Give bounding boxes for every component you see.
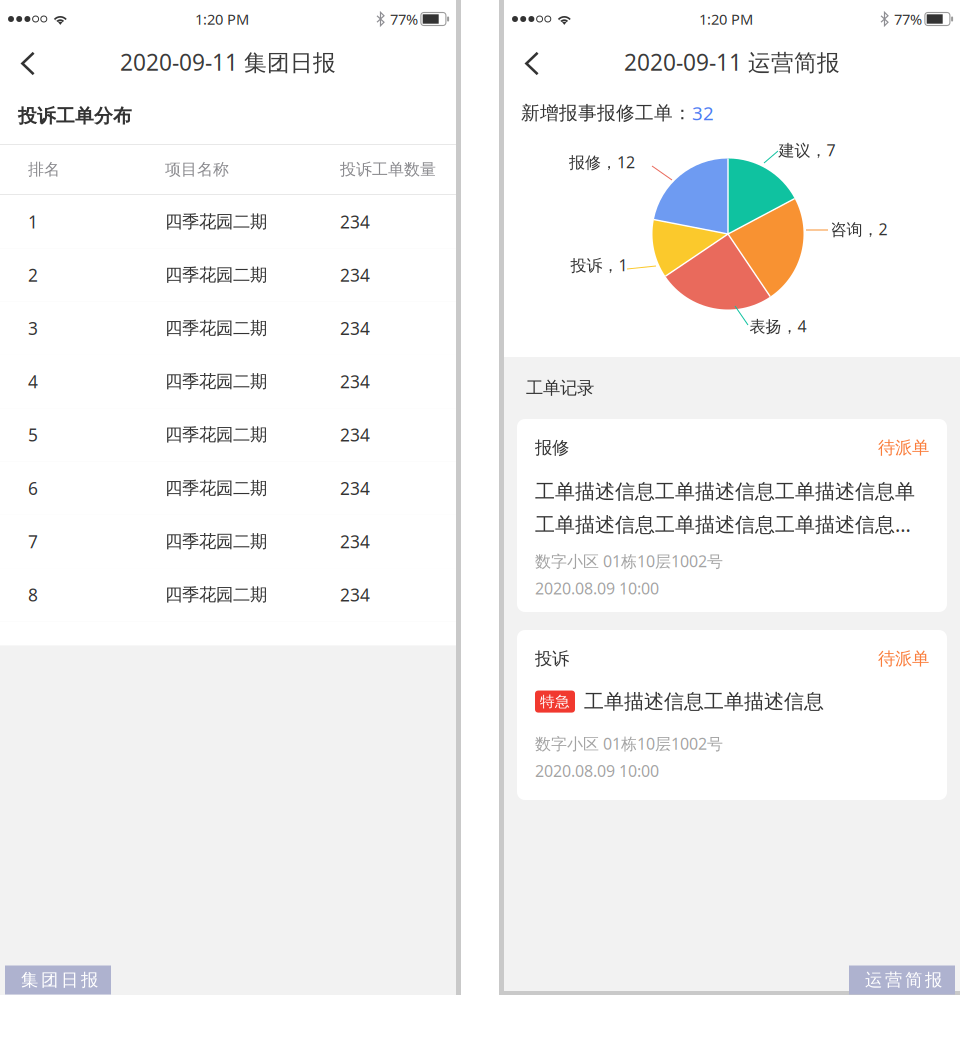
staticText: 234 <box>340 423 370 446</box>
staticText: 4 <box>28 370 38 393</box>
staticText: 2020-09-11 集团日报 <box>120 47 336 77</box>
button[interactable]: 1 <box>0 195 456 248</box>
staticText: 四季花园二期 <box>165 371 267 392</box>
staticText: 四季花园二期 <box>165 264 267 286</box>
button[interactable]: 2 <box>0 248 456 302</box>
staticText: 项目名称 <box>165 160 229 179</box>
staticText: 1:20 PM <box>699 9 753 29</box>
button[interactable]: 3 <box>0 302 456 355</box>
staticText: 投诉，1 <box>570 254 627 276</box>
button[interactable]: 集团日报 <box>5 965 111 994</box>
staticText: 报修，12 <box>569 151 635 173</box>
staticText: 8 <box>28 583 38 606</box>
staticText: 7 <box>28 530 38 553</box>
staticText: 234 <box>340 583 370 606</box>
button[interactable]: 报修 <box>517 419 947 612</box>
staticText: 5 <box>28 423 38 446</box>
staticText: 77% <box>894 9 922 29</box>
button[interactable]: 8 <box>0 568 456 621</box>
staticText: 四季花园二期 <box>165 531 267 552</box>
staticText: 集团日报 <box>21 969 98 991</box>
staticText: 数字小区 01栋10层1002号 <box>535 550 723 572</box>
staticText: 投诉工单数量 <box>340 160 436 179</box>
staticText: 四季花园二期 <box>165 424 267 445</box>
staticText: 2 <box>28 263 38 286</box>
staticText: 1:20 PM <box>195 9 249 29</box>
button[interactable]: Back <box>0 28 53 89</box>
staticText: 2020.08.09 10:00 <box>535 578 659 599</box>
staticText: 投诉 <box>535 648 569 669</box>
button[interactable]: Back <box>504 28 557 89</box>
button[interactable]: 5 <box>0 408 456 461</box>
staticText: 特急 <box>540 693 570 711</box>
staticText: 四季花园二期 <box>165 584 267 605</box>
staticText: 四季花园二期 <box>165 211 267 232</box>
staticText: 234 <box>340 210 370 233</box>
staticText: 数字小区 01栋10层1002号 <box>535 733 723 754</box>
staticText: 234 <box>340 477 370 500</box>
staticText: 排名 <box>28 160 60 179</box>
staticText: 234 <box>340 317 370 340</box>
staticText: 表扬，4 <box>749 315 806 337</box>
staticText: 咨询，2 <box>830 218 887 240</box>
button[interactable]: 7 <box>0 515 456 568</box>
staticText: 77% <box>390 9 418 29</box>
button[interactable]: 4 <box>0 355 456 408</box>
button[interactable]: 6 <box>0 461 456 515</box>
staticText: 报修 <box>535 437 569 458</box>
staticText: 待派单 <box>878 437 929 458</box>
staticText: 32 <box>692 101 714 125</box>
staticText: 建议，7 <box>778 139 835 161</box>
staticText: 新增报事报修工单： <box>521 101 692 124</box>
staticText: 3 <box>28 317 38 340</box>
staticText: 234 <box>340 370 370 393</box>
staticText: 234 <box>340 263 370 286</box>
staticText: 工单记录 <box>526 377 594 399</box>
staticText: 2020.08.09 10:00 <box>535 760 659 781</box>
button[interactable]: 运营简报 <box>849 965 955 994</box>
staticText: 投诉工单分布 <box>18 104 132 127</box>
staticText: 四季花园二期 <box>165 318 267 339</box>
staticText: 1 <box>28 210 38 233</box>
staticText: 工单描述信息工单描述信息工单描述信息… <box>535 511 911 537</box>
staticText: 6 <box>28 477 38 500</box>
staticText: 运营简报 <box>865 969 942 991</box>
staticText: 待派单 <box>878 648 929 669</box>
staticText: 2020-09-11 运营简报 <box>624 47 840 77</box>
staticText: 工单描述信息工单描述信息 <box>584 689 824 714</box>
staticText: 四季花园二期 <box>165 477 267 499</box>
button[interactable]: 投诉 <box>517 630 947 800</box>
staticText: 工单描述信息工单描述信息工单描述信息单 <box>535 479 915 504</box>
staticText: 234 <box>340 530 370 553</box>
